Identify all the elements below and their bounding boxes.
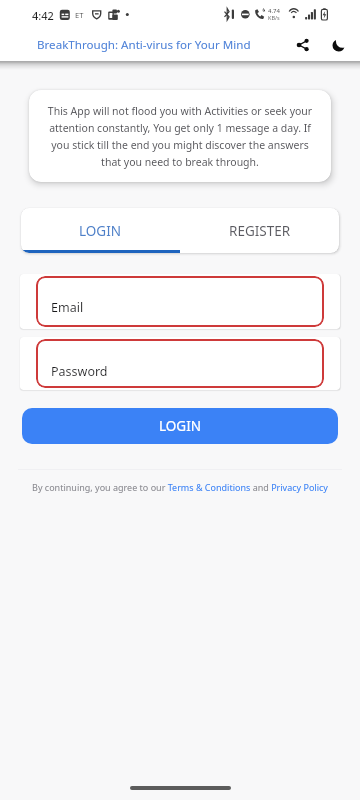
staticText: REGISTER — [229, 222, 291, 240]
button[interactable]: Password — [36, 339, 324, 388]
staticText: ET — [75, 10, 84, 20]
button[interactable]: Toggle dark mode — [322, 29, 354, 61]
button[interactable]: Email — [36, 276, 324, 327]
button[interactable]: REGISTER — [180, 208, 339, 253]
staticText: Email — [51, 299, 84, 316]
staticText: This App will not flood you with Activit… — [43, 104, 317, 169]
staticText: KB/s — [268, 14, 280, 21]
button[interactable]: Share — [287, 29, 319, 61]
staticText: 4:42 — [32, 8, 54, 23]
staticText: LOGIN — [79, 222, 122, 240]
button[interactable]: LOGIN — [21, 208, 180, 253]
staticText: By continuing, you agree to our Terms & … — [32, 481, 328, 493]
staticText: 4.74 — [268, 7, 280, 15]
button[interactable]: LOGIN — [22, 408, 338, 444]
staticText: Password — [51, 363, 108, 380]
staticText: LOGIN — [159, 417, 202, 435]
staticText: BreakThrough: Anti-virus for Your Mind — [37, 37, 251, 53]
